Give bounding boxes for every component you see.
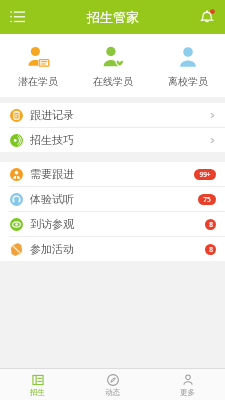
- staticText: 99+: [199, 170, 211, 179]
- staticText: 参加活动: [30, 242, 74, 256]
- staticText: 动态: [105, 388, 120, 397]
- button[interactable]: 潜在学员: [0, 40, 75, 92]
- staticText: 到访参观: [30, 217, 74, 231]
- staticText: 需要跟进: [30, 167, 74, 181]
- button[interactable]: 需要跟进: [0, 162, 225, 186]
- staticText: 招生: [30, 388, 45, 397]
- staticText: 体验试听: [30, 192, 74, 206]
- button[interactable]: 离校学员: [150, 40, 225, 92]
- staticText: 在线学员: [93, 75, 133, 88]
- staticText: 跟进记录: [30, 108, 74, 122]
- staticText: 招生技巧: [30, 133, 74, 147]
- button[interactable]: Notifications: [194, 4, 220, 30]
- button[interactable]: 体验试听: [0, 187, 225, 211]
- staticText: 潜在学员: [18, 75, 58, 88]
- button[interactable]: 招生: [0, 373, 75, 397]
- button[interactable]: 动态: [75, 373, 150, 397]
- button[interactable]: 参加活动: [0, 237, 225, 261]
- button[interactable]: 招生技巧: [0, 128, 225, 152]
- button[interactable]: Menu: [4, 4, 30, 30]
- staticText: 更多: [180, 388, 195, 397]
- staticText: 75: [203, 195, 211, 204]
- button[interactable]: 跟进记录: [0, 103, 225, 127]
- staticText: 8: [209, 220, 213, 229]
- staticText: 招生管家: [87, 9, 139, 25]
- staticText: 8: [209, 245, 213, 254]
- button[interactable]: 到访参观: [0, 212, 225, 236]
- button[interactable]: 更多: [150, 373, 225, 397]
- staticText: 离校学员: [168, 75, 208, 88]
- button[interactable]: 在线学员: [75, 40, 150, 92]
